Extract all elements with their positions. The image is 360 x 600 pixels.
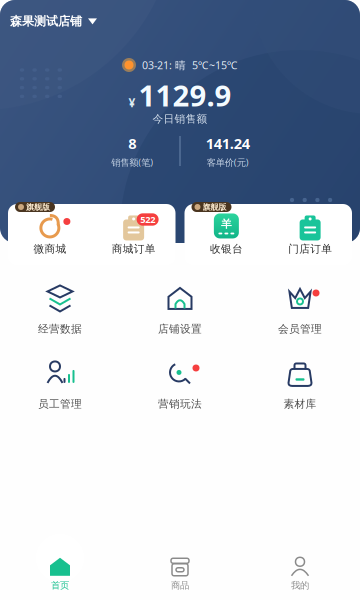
staticText: 今日销售额 [152, 112, 207, 125]
staticText: 141.24 [206, 134, 250, 153]
button[interactable]: 会员管理 [240, 283, 360, 337]
staticText: 商城订单 [112, 242, 156, 255]
button[interactable]: 商品 [120, 548, 240, 600]
staticText: 营销玩法 [158, 397, 202, 410]
staticText: 03-21: 晴 [142, 58, 186, 72]
staticText: 店铺设置 [158, 322, 202, 335]
staticText: 522 [140, 213, 155, 226]
staticText: 我的 [291, 580, 309, 591]
staticText: 经营数据 [38, 322, 82, 335]
button[interactable]: 员工管理 [0, 358, 120, 412]
staticText: 旗舰版 [26, 202, 50, 212]
staticText: 客单价(元) [207, 156, 249, 168]
staticText: 1129.9 [138, 75, 231, 114]
button[interactable]: 我的 [240, 548, 360, 600]
button[interactable]: 门店订单 [268, 204, 352, 265]
button[interactable]: 素材库 [240, 358, 360, 412]
button[interactable]: 森果测试店铺 [0, 8, 105, 35]
staticText: 森果测试店铺 [10, 14, 82, 29]
staticText: 素材库 [283, 397, 316, 410]
staticText: 门店订单 [288, 242, 332, 255]
staticText: 商品 [171, 580, 189, 591]
staticText: 8 [128, 134, 136, 153]
button[interactable]: 微商城 [8, 204, 92, 265]
staticText: 销售额(笔) [111, 156, 153, 168]
button[interactable]: 经营数据 [0, 283, 120, 337]
staticText: ¥ [128, 94, 135, 110]
staticText: 旗舰版 [202, 202, 226, 212]
button[interactable]: 营销玩法 [120, 358, 240, 412]
staticText: 微商城 [33, 242, 66, 255]
staticText: 羊 [221, 217, 232, 231]
button[interactable]: 首页 [0, 548, 120, 600]
button[interactable]: 商城订单 [92, 204, 176, 265]
staticText: 首页 [51, 580, 69, 591]
button[interactable]: 羊 [184, 204, 268, 265]
staticText: 5℃~15℃ [192, 58, 238, 72]
staticText: 会员管理 [278, 322, 322, 335]
staticText: 员工管理 [38, 397, 82, 410]
staticText: 收银台 [210, 242, 243, 255]
button[interactable]: 店铺设置 [120, 283, 240, 337]
